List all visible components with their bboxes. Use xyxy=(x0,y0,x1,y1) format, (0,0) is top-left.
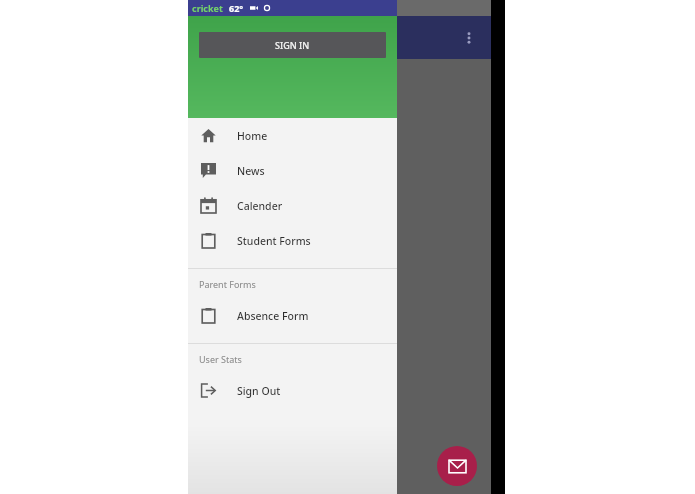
staticText: ublic schools xyxy=(194,201,264,217)
staticText: 500 students xyxy=(194,235,264,251)
staticText: come a national xyxy=(194,150,281,166)
staticText: ats on the path xyxy=(194,337,276,353)
staticText: their dreams xyxy=(194,354,264,370)
staticText: County xyxy=(194,286,233,302)
button[interactable]: News xyxy=(188,153,397,188)
staticText: News xyxy=(237,164,265,178)
staticText: ildren with xyxy=(194,167,252,183)
button[interactable]: Calender xyxy=(188,188,397,223)
staticText: t of students xyxy=(194,269,263,285)
button[interactable]: Sign Out xyxy=(188,373,397,408)
staticText: time on task xyxy=(194,388,261,404)
button[interactable]: Send email xyxy=(437,446,477,486)
staticText: cricket xyxy=(192,2,223,14)
staticText: hard. Be nice. xyxy=(194,371,268,387)
button[interactable]: Home xyxy=(188,118,397,153)
staticText: 62° xyxy=(229,2,244,14)
staticText: ten through xyxy=(194,116,259,132)
staticText: Calender xyxy=(237,199,283,213)
staticText: llege. As we xyxy=(194,320,261,336)
staticText: ildren. Houston xyxy=(194,218,278,234)
staticText: Parent Forms xyxy=(199,278,256,290)
staticText: Student Forms xyxy=(237,234,311,248)
staticText: as founded in xyxy=(194,184,268,200)
button[interactable]: Absence Form xyxy=(188,298,397,333)
staticText: User Stats xyxy=(199,353,242,365)
button[interactable]: Student Forms xyxy=(188,223,397,258)
button[interactable]: More options xyxy=(453,22,485,54)
staticText: t of KIPPsters, xyxy=(194,303,270,319)
staticText: Absence Form xyxy=(237,309,309,323)
staticText: Home xyxy=(237,129,268,143)
staticText: SIGN IN xyxy=(275,39,310,51)
staticText: world beyond. xyxy=(194,133,272,149)
staticText: Sign Out xyxy=(237,384,281,398)
button[interactable]: SIGN IN xyxy=(199,32,386,58)
